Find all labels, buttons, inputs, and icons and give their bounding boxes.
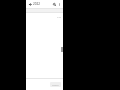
button[interactable]: Search — [52, 2, 57, 7]
button[interactable]: Open — [50, 82, 61, 87]
button[interactable]: More options — [57, 2, 62, 7]
button[interactable]: Back — [27, 1, 33, 7]
staticText: 2022 Personal.pdf — [33, 2, 52, 6]
button[interactable]: 2022 Personal.pdf — [33, 0, 52, 8]
staticText: Open — [52, 83, 59, 86]
staticText: 1/4 — [57, 15, 61, 18]
